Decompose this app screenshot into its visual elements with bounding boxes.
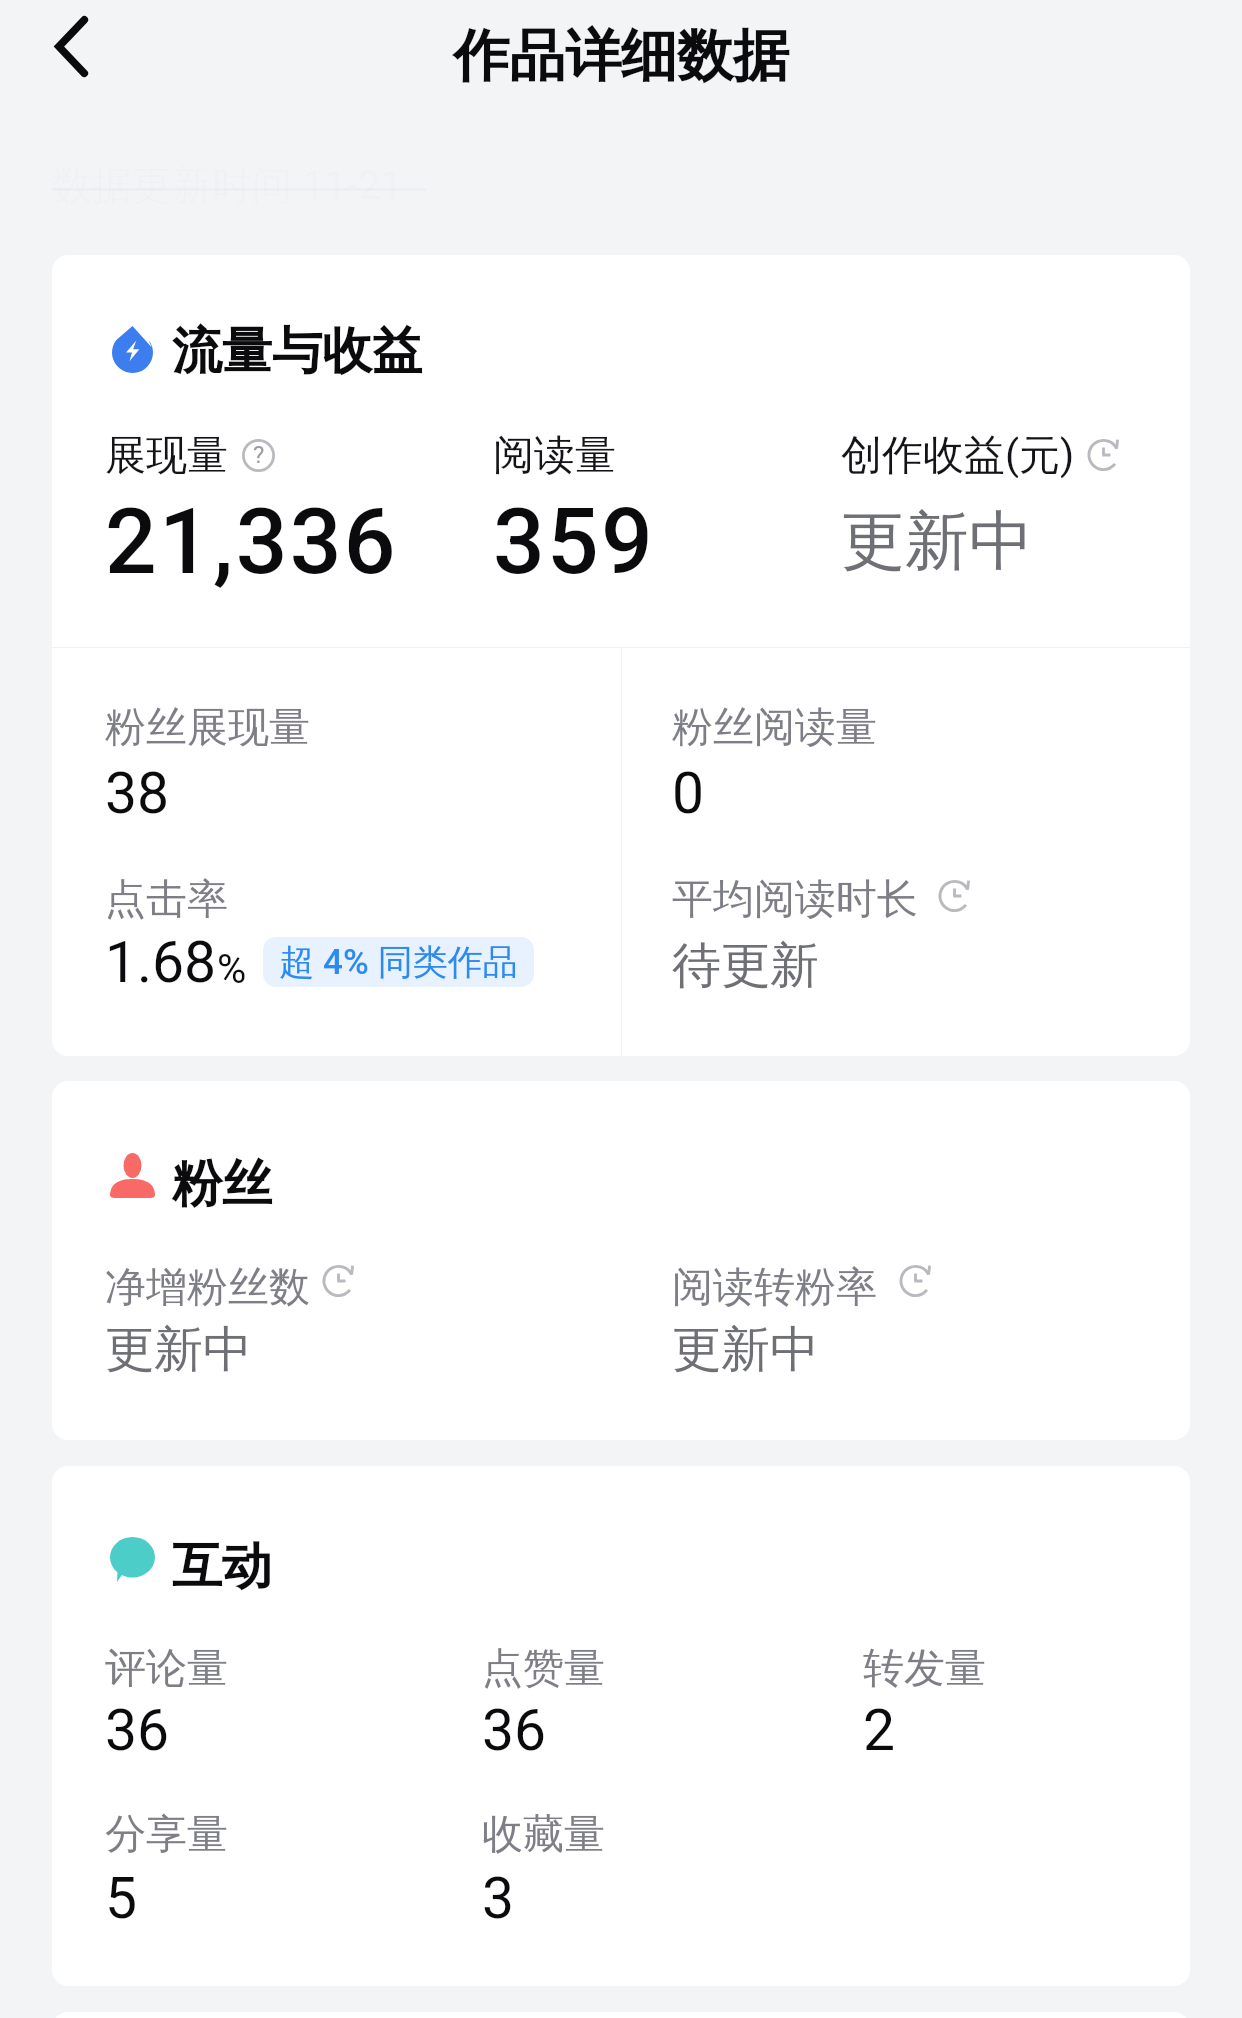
staticText: 359: [493, 489, 656, 596]
staticText: 3: [482, 1865, 515, 1932]
staticText: 平均阅读时长: [672, 874, 918, 926]
staticText: 评论量: [105, 1643, 228, 1695]
button[interactable]: 转发量 2: [850, 1638, 1150, 1748]
button[interactable]: 阅读转粉率 更新中: [659, 1256, 1169, 1371]
staticText: 超: [279, 940, 323, 984]
staticText: 1.68: [105, 929, 217, 996]
button[interactable]: 点赞量 36: [469, 1638, 839, 1748]
button[interactable]: 粉丝阅读量 0: [659, 690, 1169, 800]
staticText: 创作收益(元): [841, 430, 1075, 482]
button[interactable]: 净增粉丝数 更新中: [92, 1256, 612, 1371]
button[interactable]: 粉丝展现量 38: [92, 690, 612, 800]
staticText: 21,336: [105, 489, 398, 596]
button[interactable]: 收藏量 3: [469, 1804, 839, 1914]
staticText: 粉丝阅读量: [672, 702, 877, 754]
staticText: 阅读转粉率: [672, 1262, 877, 1314]
staticText: 36: [105, 1697, 170, 1764]
staticText: 分享量: [105, 1809, 228, 1861]
staticText: 更新中: [105, 1319, 252, 1381]
staticText: 点击率: [105, 874, 228, 926]
button[interactable]: 展现量 21,336: [92, 310, 472, 470]
staticText: 更新中: [672, 1319, 819, 1381]
staticText: 更新中: [841, 501, 1033, 582]
staticText: %: [217, 946, 247, 993]
staticText: 收藏量: [482, 1809, 605, 1861]
staticText: 阅读量: [493, 430, 616, 482]
button[interactable]: 创作收益(元) 更新中: [828, 310, 1158, 470]
button[interactable]: 评论量 36: [92, 1638, 462, 1748]
staticText: 互动: [172, 1535, 272, 1598]
button[interactable]: 阅读量 359: [480, 310, 820, 470]
staticText: 粉丝展现量: [105, 702, 310, 754]
staticText: 2: [863, 1697, 896, 1764]
staticText: 流量与收益: [172, 320, 422, 383]
staticText: 5: [105, 1865, 138, 1932]
button[interactable]: Back: [35, 11, 107, 83]
staticText: 点赞量: [482, 1643, 605, 1695]
staticText: 粉丝: [172, 1153, 272, 1216]
button[interactable]: 点击率 1.68%: [92, 862, 612, 972]
staticText: 0: [672, 760, 705, 827]
staticText: 36: [482, 1697, 547, 1764]
button[interactable]: 分享量 5: [92, 1804, 462, 1914]
staticText: 待更新: [672, 935, 819, 997]
button[interactable]: 平均阅读时长 待更新: [659, 862, 1169, 972]
staticText: 展现量: [105, 430, 228, 482]
staticText: 38: [105, 760, 170, 827]
staticText: 作品详细数据: [453, 21, 789, 92]
staticText: 净增粉丝数: [105, 1262, 310, 1314]
staticText: ?: [253, 441, 265, 469]
staticText: 4%: [323, 942, 369, 983]
staticText: 同类作品: [369, 940, 518, 984]
staticText: 转发量: [863, 1643, 986, 1695]
